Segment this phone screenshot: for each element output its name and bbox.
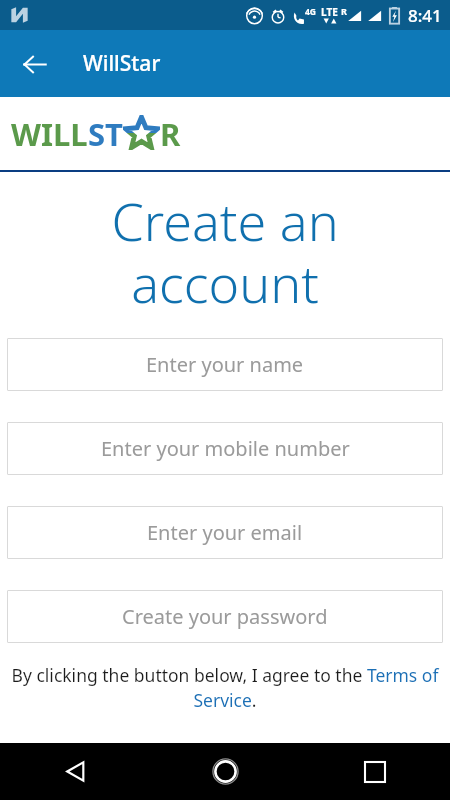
staticText: Enter your mobile number — [101, 435, 350, 462]
staticText: Create an account — [0, 185, 450, 318]
staticText: 8:41 — [408, 4, 442, 27]
staticText: By clicking the button below, I agree to… — [8, 663, 442, 712]
staticText: R — [160, 113, 181, 155]
button[interactable]: Recent apps — [300, 743, 450, 800]
staticText: R — [341, 5, 347, 17]
staticText: Enter your email — [147, 519, 303, 546]
staticText: Enter your name — [146, 351, 304, 378]
button[interactable]: Create your password — [7, 590, 443, 643]
button[interactable]: Navigate up — [10, 40, 58, 88]
staticText: ST — [88, 113, 123, 155]
staticText: Create your password — [122, 603, 328, 630]
staticText: LTE — [321, 5, 338, 19]
staticText: 4G — [305, 6, 317, 18]
button[interactable]: Back — [0, 743, 150, 800]
button[interactable]: Enter your mobile number — [7, 422, 443, 475]
staticText: WILL — [11, 113, 88, 155]
button[interactable]: Enter your email — [7, 506, 443, 559]
button[interactable]: Home — [150, 743, 300, 800]
button[interactable]: By clicking the button below, I agree to… — [8, 663, 442, 712]
button[interactable]: Enter your name — [7, 338, 443, 391]
staticText: WillStar — [83, 49, 161, 78]
